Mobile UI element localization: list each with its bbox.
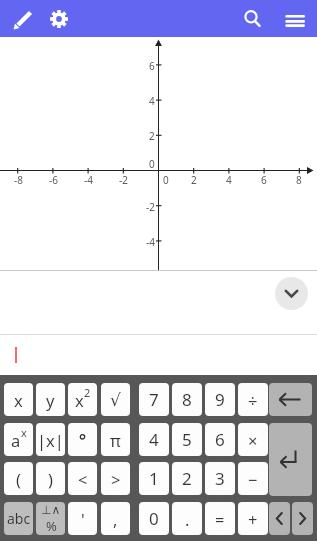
staticText: 8 <box>182 388 192 411</box>
staticText: √ <box>110 390 121 410</box>
button[interactable] <box>269 502 290 535</box>
button[interactable]: 5 <box>172 423 202 456</box>
staticText: ' <box>81 508 85 530</box>
staticText: 0 <box>149 157 155 169</box>
button[interactable] <box>292 502 313 535</box>
button[interactable]: 8 <box>172 383 202 416</box>
staticText: 4 <box>149 94 155 106</box>
button[interactable]: 9 <box>205 383 235 416</box>
staticText: < <box>78 468 88 490</box>
button[interactable]: > <box>101 462 130 495</box>
staticText: abc <box>7 509 31 528</box>
staticText: 0 <box>149 507 159 530</box>
button[interactable]: , <box>101 502 130 535</box>
button[interactable]: ÷ <box>238 383 268 416</box>
button[interactable]: a <box>4 423 33 456</box>
staticText: 3 <box>215 467 225 490</box>
button[interactable]: 0 <box>139 502 169 535</box>
staticText: ÷ <box>248 389 258 411</box>
button[interactable]: ⊥∧ <box>36 502 65 535</box>
staticText: -2 <box>146 200 155 212</box>
staticText: , <box>113 508 118 530</box>
staticText: a <box>11 429 21 451</box>
button[interactable]: 6 <box>205 423 235 456</box>
button[interactable]: x <box>4 383 33 416</box>
staticText: 7 <box>149 388 159 411</box>
button[interactable]: 3 <box>205 462 235 495</box>
staticText: 0 <box>163 173 169 185</box>
staticText: 5 <box>182 428 192 451</box>
button[interactable] <box>233 1 269 37</box>
staticText: |x| <box>37 429 64 451</box>
staticText: + <box>248 508 258 530</box>
staticText: % <box>46 517 57 535</box>
button[interactable] <box>275 277 308 310</box>
button[interactable]: 2 <box>172 462 202 495</box>
staticText: π <box>110 429 121 451</box>
staticText: 8 <box>296 173 302 185</box>
button[interactable]: 4 <box>139 423 169 456</box>
button[interactable] <box>0 335 317 375</box>
button[interactable]: × <box>238 423 268 456</box>
staticText: ⊥∧ <box>41 503 61 517</box>
button[interactable]: x <box>68 383 97 416</box>
button[interactable]: . <box>172 502 202 535</box>
staticText: -8 <box>14 173 23 185</box>
button[interactable]: 7 <box>139 383 169 416</box>
staticText: 6 <box>261 173 267 185</box>
staticText: 4 <box>226 173 232 185</box>
staticText: 4 <box>149 428 159 451</box>
staticText: 2 <box>84 385 91 400</box>
staticText: -4 <box>84 173 93 185</box>
staticText: = <box>215 508 225 530</box>
button[interactable]: ) <box>36 462 65 495</box>
staticText: y <box>46 389 55 411</box>
staticText: 9 <box>215 388 225 411</box>
staticText: 6 <box>149 59 155 71</box>
staticText: ) <box>48 468 53 490</box>
staticText: 1 <box>149 467 159 490</box>
button[interactable]: − <box>238 462 268 495</box>
button[interactable] <box>41 1 77 37</box>
button[interactable]: = <box>205 502 235 535</box>
staticText: -4 <box>146 235 155 247</box>
staticText: -2 <box>119 173 128 185</box>
button[interactable]: √ <box>101 383 130 416</box>
button[interactable] <box>269 423 312 496</box>
button[interactable]: ' <box>68 502 97 535</box>
staticText: 2 <box>182 467 192 490</box>
button[interactable] <box>4 1 40 37</box>
button[interactable]: 1 <box>139 462 169 495</box>
staticText: . <box>185 508 190 530</box>
button[interactable]: + <box>238 502 268 535</box>
button[interactable] <box>68 423 97 456</box>
staticText: 6 <box>215 428 225 451</box>
button[interactable]: < <box>68 462 97 495</box>
staticText: ( <box>16 468 21 490</box>
button[interactable]: y <box>36 383 65 416</box>
staticText: > <box>111 468 121 490</box>
button[interactable]: abc <box>4 502 33 535</box>
staticText: 2 <box>191 173 197 185</box>
staticText: x <box>75 389 84 411</box>
button[interactable]: π <box>101 423 130 456</box>
button[interactable]: |x| <box>36 423 65 456</box>
button[interactable]: ( <box>4 462 33 495</box>
staticText: × <box>248 429 258 451</box>
staticText: x <box>21 425 27 440</box>
staticText: − <box>248 468 258 490</box>
staticText: -6 <box>49 173 58 185</box>
staticText: x <box>14 389 23 411</box>
button[interactable] <box>277 3 313 39</box>
staticText: 2 <box>149 129 155 141</box>
button[interactable] <box>269 383 312 416</box>
